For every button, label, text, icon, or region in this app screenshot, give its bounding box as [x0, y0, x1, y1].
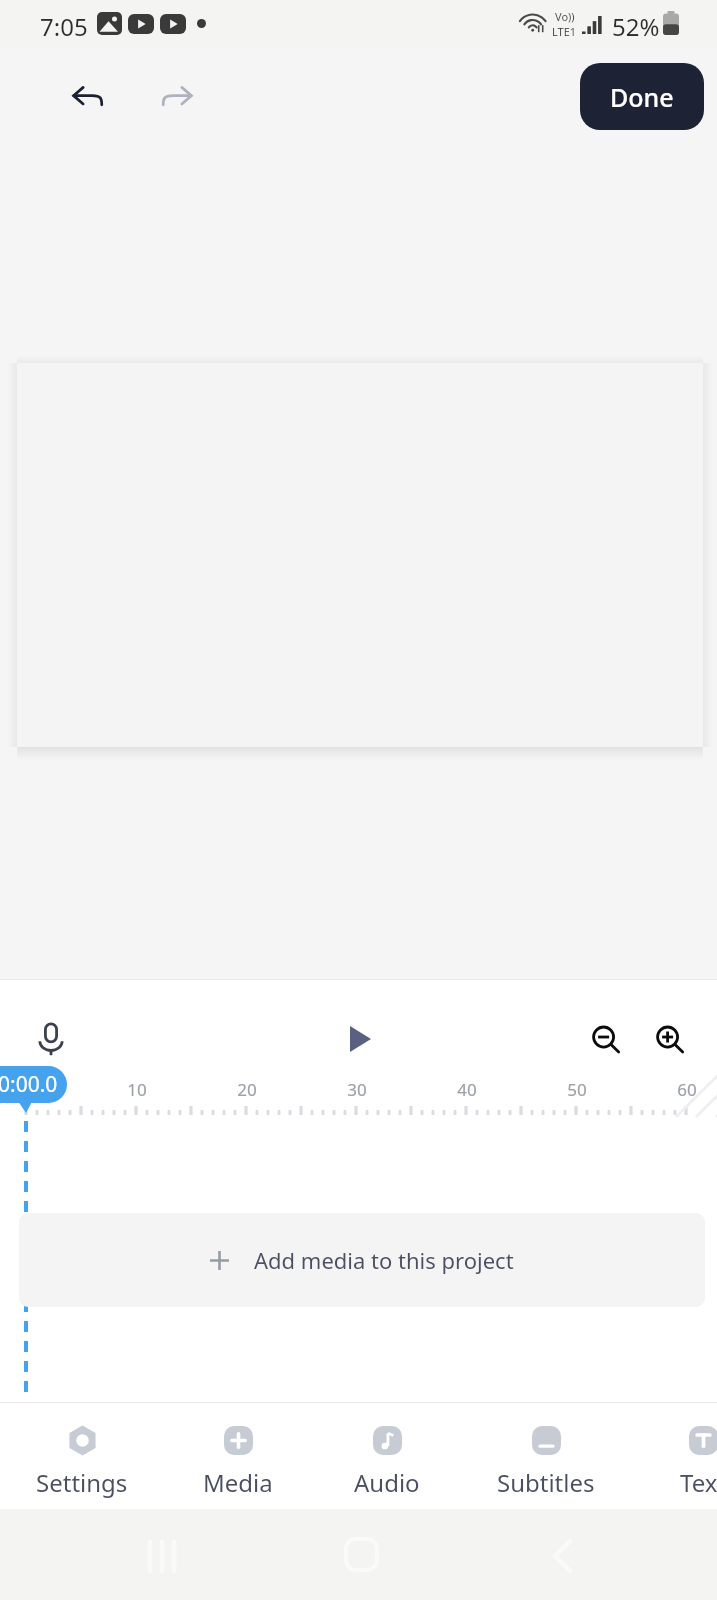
staticText: Add media to this project [254, 1245, 514, 1275]
staticText: 60 [677, 1078, 697, 1101]
button[interactable]: Undo [62, 71, 112, 121]
staticText: 30 [347, 1078, 367, 1101]
staticText: Done [610, 80, 674, 114]
staticText: 52% [612, 10, 660, 43]
button[interactable]: Add media to this project [19, 1213, 705, 1307]
staticText: 50 [567, 1078, 587, 1101]
staticText: Subtitles [497, 1466, 595, 1499]
staticText: Settings [36, 1466, 128, 1499]
staticText: LTE1 [552, 24, 577, 39]
button[interactable]: Zoom out [581, 1015, 631, 1065]
button[interactable]: Audio [312, 1426, 462, 1509]
button[interactable]: Done [580, 63, 704, 130]
staticText: 7:05 [40, 10, 88, 43]
button[interactable]: Media [163, 1426, 313, 1509]
button[interactable]: Zoom in [645, 1015, 695, 1065]
staticText: 40 [457, 1078, 477, 1101]
button[interactable]: Text [628, 1426, 717, 1509]
staticText: 00:00.0 [0, 1070, 58, 1099]
staticText: 10 [127, 1078, 147, 1101]
staticText: 20 [237, 1078, 257, 1101]
button[interactable]: Redo [152, 71, 202, 121]
staticText: Audio [354, 1466, 420, 1499]
staticText: Text [680, 1466, 717, 1499]
staticText: Vo)) [555, 9, 575, 24]
staticText: Media [203, 1466, 273, 1499]
button[interactable]: Record voiceover [26, 1014, 76, 1064]
button[interactable]: Play [335, 1014, 385, 1064]
button[interactable]: Subtitles [471, 1426, 621, 1509]
button[interactable]: Settings [7, 1426, 157, 1509]
